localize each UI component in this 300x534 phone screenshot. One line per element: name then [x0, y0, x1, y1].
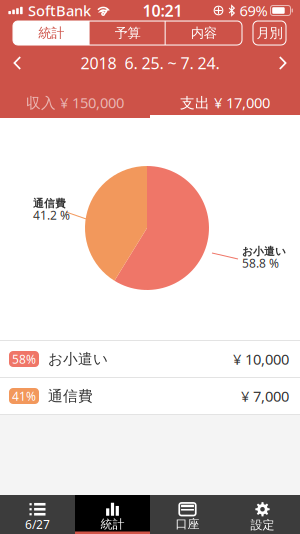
staticText: ¥ 10,000: [233, 349, 289, 369]
staticText: 予算: [114, 25, 140, 41]
staticText: 通信費: [48, 387, 93, 405]
staticText: SoftBank: [28, 1, 91, 20]
staticText: 10:21: [142, 0, 182, 21]
button[interactable]: 6/27: [0, 495, 75, 534]
button[interactable]: Next month: [269, 49, 296, 77]
button[interactable]: 統計: [75, 495, 150, 534]
button[interactable]: 41%: [0, 378, 300, 414]
staticText: お小遣い: [242, 245, 286, 258]
staticText: 6/27: [25, 516, 50, 532]
button[interactable]: 統計: [13, 21, 89, 45]
staticText: ¥ 7,000: [241, 386, 289, 406]
staticText: 月別: [256, 25, 282, 41]
button[interactable]: 設定: [225, 495, 300, 534]
staticText: 設定: [250, 518, 274, 532]
staticText: 58%: [12, 351, 36, 367]
staticText: 41%: [12, 388, 36, 404]
staticText: 58.8 %: [242, 255, 279, 271]
staticText: お小遣い: [48, 350, 108, 368]
staticText: 統計: [100, 517, 124, 532]
staticText: 41.2 %: [33, 207, 70, 223]
staticText: 2018 6. 25. ~ 7. 24.: [80, 52, 219, 74]
button[interactable]: 月別: [253, 21, 286, 45]
staticText: 内容: [191, 25, 217, 41]
staticText: 口座: [175, 517, 199, 531]
button[interactable]: 内容: [166, 21, 242, 45]
button[interactable]: Previous month: [4, 49, 31, 77]
staticText: 通信費: [33, 197, 66, 210]
button[interactable]: 口座: [150, 495, 225, 534]
staticText: 69%: [239, 1, 267, 20]
staticText: 収入 ¥ 150,000: [26, 93, 124, 112]
button[interactable]: 支出 ¥ 17,000: [150, 90, 300, 118]
button[interactable]: 収入 ¥ 150,000: [0, 90, 150, 118]
staticText: 統計: [38, 25, 64, 41]
button[interactable]: 58%: [0, 341, 300, 377]
button[interactable]: 予算: [89, 21, 166, 45]
staticText: 支出 ¥ 17,000: [180, 93, 270, 112]
